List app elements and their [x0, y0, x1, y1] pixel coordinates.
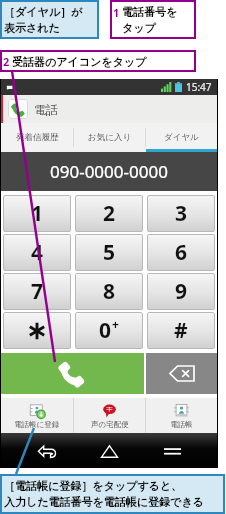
button[interactable]: 発信	[1, 353, 144, 394]
staticText: ダイヤル	[164, 132, 199, 143]
staticText: 15:47	[186, 80, 212, 94]
button[interactable]: 電話	[8, 99, 28, 119]
staticText: 5	[103, 238, 116, 267]
button[interactable]: お気に入り	[74, 123, 145, 152]
staticText: 0	[99, 316, 112, 345]
staticText: お気に入り	[88, 132, 132, 143]
staticText: 電話帳	[170, 420, 193, 429]
staticText: 090-0000-0000	[50, 160, 168, 183]
button[interactable]: 2	[75, 195, 143, 232]
button[interactable]: 6	[147, 234, 215, 271]
staticText: 電話帳に登録	[14, 420, 60, 429]
button[interactable]: 9	[147, 273, 215, 310]
button[interactable]: 8	[75, 273, 143, 310]
staticText: 発着信履歴	[16, 132, 59, 143]
staticText: 8	[103, 277, 116, 306]
staticText: 1	[113, 5, 120, 20]
button[interactable]: 発着信履歴	[1, 123, 73, 152]
button[interactable]: ホーム	[92, 434, 126, 468]
button[interactable]	[3, 312, 71, 349]
staticText: 電話	[34, 102, 58, 117]
staticText: #	[174, 316, 188, 345]
staticText: 声の宅配便	[91, 420, 129, 429]
button[interactable]: 1	[3, 195, 71, 232]
staticText: 7	[31, 277, 44, 306]
staticText: 6	[175, 238, 188, 267]
staticText: +	[112, 316, 119, 332]
button[interactable]: 電話帳に登録	[1, 398, 73, 433]
button[interactable]: 4	[3, 234, 71, 271]
staticText: 4	[31, 238, 44, 267]
staticText: 2	[3, 54, 10, 69]
staticText: 1	[31, 199, 44, 228]
button[interactable]: 5	[75, 234, 143, 271]
staticText: 電話番号を タップ	[122, 5, 178, 35]
button[interactable]: #	[147, 312, 215, 349]
staticText: ［電話帳に登録］をタップすると、 入力した電話番号を電話帳に登録できる	[4, 479, 204, 509]
button[interactable]: 削除	[146, 353, 217, 394]
staticText: 3	[175, 199, 188, 228]
button[interactable]: 3	[147, 195, 215, 232]
button[interactable]: 電話帳	[146, 398, 217, 433]
button[interactable]: 戻る	[30, 434, 64, 468]
button[interactable]: 7	[3, 273, 71, 310]
staticText: ［ダイヤル］が 表示された	[4, 5, 83, 35]
staticText: 9	[175, 277, 188, 306]
button[interactable]: 最近のアプリ	[155, 434, 189, 468]
button[interactable]: ダイヤル	[146, 123, 217, 152]
staticText: 受話器のアイコンをタップ	[12, 55, 147, 69]
button[interactable]: 0	[75, 312, 143, 349]
button[interactable]: 声の宅配便	[74, 398, 145, 433]
staticText: 2	[103, 199, 116, 228]
